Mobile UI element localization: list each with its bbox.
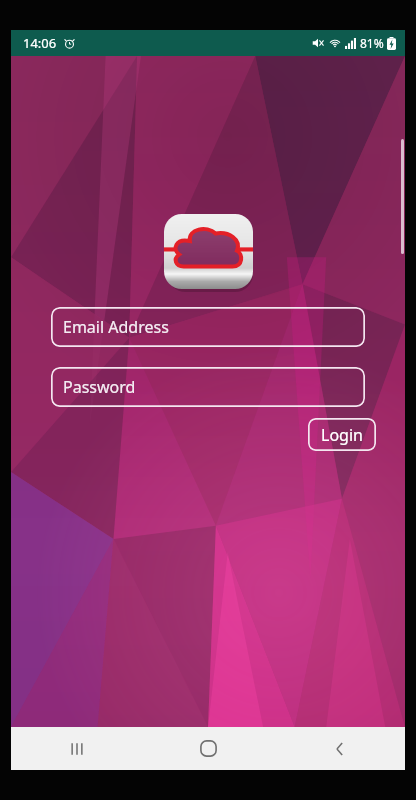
button[interactable]: Home	[143, 727, 274, 770]
staticText: 81%	[360, 35, 384, 51]
button[interactable]: Back	[274, 727, 405, 770]
staticText: Password	[63, 376, 136, 398]
staticText: 14:06	[23, 34, 57, 52]
button[interactable]: Recent apps	[11, 727, 143, 770]
staticText: Login	[321, 424, 363, 446]
button[interactable]: Email Address	[51, 307, 365, 347]
button[interactable]: Login	[308, 418, 376, 451]
button[interactable]: Password	[51, 367, 365, 407]
staticText: Email Address	[63, 316, 169, 338]
